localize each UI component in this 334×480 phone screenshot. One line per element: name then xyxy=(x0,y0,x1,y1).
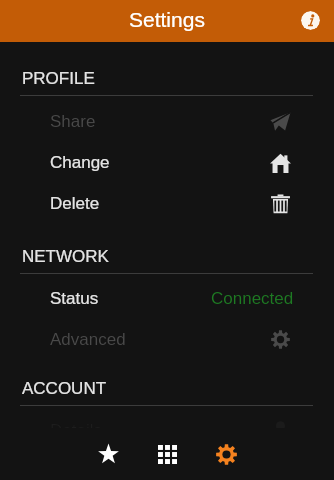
staticText: NETWORK xyxy=(22,247,109,266)
button[interactable]: Delete xyxy=(0,183,334,224)
button[interactable]: Info xyxy=(301,11,320,30)
button[interactable]: Status xyxy=(0,278,334,319)
button[interactable]: Advanced xyxy=(0,319,334,360)
button[interactable]: Apps xyxy=(144,431,190,477)
button[interactable]: Details xyxy=(0,410,334,451)
button[interactable]: Change xyxy=(0,142,334,183)
staticText: ACCOUNT xyxy=(22,379,107,398)
button[interactable]: Share xyxy=(0,101,334,142)
staticText: Advanced xyxy=(50,330,126,349)
staticText: Status xyxy=(50,289,99,308)
staticText: Share xyxy=(50,112,96,131)
staticText: Settings xyxy=(129,8,205,31)
staticText: Connected xyxy=(211,289,294,308)
staticText: Delete xyxy=(50,194,100,213)
staticText: Change xyxy=(50,153,110,172)
button[interactable]: Favourites xyxy=(85,431,131,477)
staticText: PROFILE xyxy=(22,69,95,88)
button[interactable]: Settings xyxy=(203,431,249,477)
